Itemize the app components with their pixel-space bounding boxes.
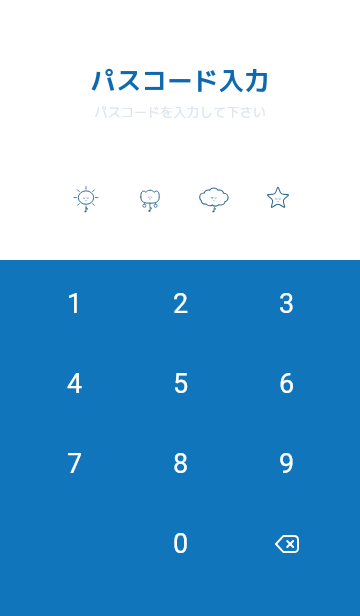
- staticText: 9: [279, 448, 295, 480]
- staticText: 1: [67, 288, 83, 320]
- staticText: パスコードを入力して下さい: [94, 103, 266, 121]
- button[interactable]: 6: [234, 344, 340, 424]
- staticText: 4: [67, 368, 83, 400]
- button[interactable]: 3: [234, 264, 340, 344]
- button[interactable]: 2: [128, 264, 234, 344]
- button[interactable]: 0: [128, 504, 234, 584]
- button[interactable]: 4: [22, 344, 128, 424]
- staticText: 2: [173, 288, 189, 320]
- staticText: 6: [279, 368, 295, 400]
- staticText: 0: [173, 528, 189, 560]
- button[interactable]: Backspace: [234, 504, 340, 584]
- button[interactable]: 5: [128, 344, 234, 424]
- staticText: パスコード入力: [90, 62, 270, 98]
- staticText: 8: [173, 448, 189, 480]
- button[interactable]: 1: [22, 264, 128, 344]
- button[interactable]: 7: [22, 424, 128, 504]
- button[interactable]: 8: [128, 424, 234, 504]
- button[interactable]: 9: [234, 424, 340, 504]
- staticText: 3: [279, 288, 295, 320]
- staticText: 7: [67, 448, 83, 480]
- staticText: 5: [173, 368, 189, 400]
